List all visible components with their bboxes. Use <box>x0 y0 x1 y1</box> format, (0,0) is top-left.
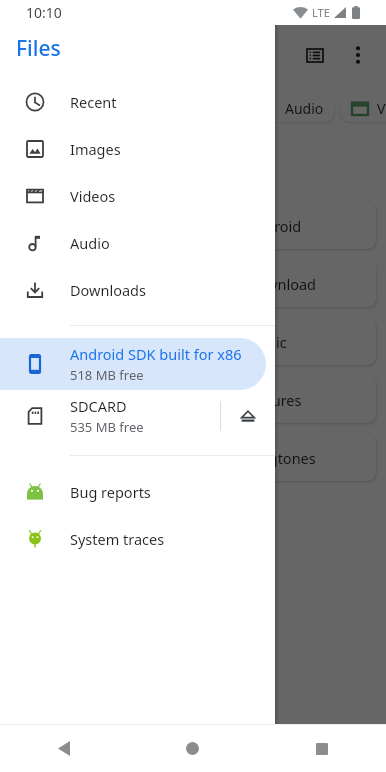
button[interactable]: Audio <box>251 95 334 122</box>
staticText: Android SDK built for x86 <box>70 344 242 364</box>
staticText: System traces <box>70 529 165 549</box>
button[interactable]: Documents <box>16 95 136 122</box>
staticText: Podcasts <box>59 448 120 468</box>
staticText: 10:10 <box>26 3 62 22</box>
button[interactable]: Back <box>0 725 128 772</box>
button[interactable]: Audio <box>0 219 275 266</box>
button[interactable]: Download <box>198 260 376 307</box>
staticText: Downloads <box>70 280 146 300</box>
button[interactable]: Recent apps <box>257 725 386 772</box>
staticText: Bug reports <box>70 482 151 502</box>
button[interactable]: Images <box>0 125 275 172</box>
button[interactable]: System traces <box>0 515 275 562</box>
button[interactable]: Videos <box>0 172 275 219</box>
staticText: DCIM <box>59 274 97 294</box>
staticText: Images <box>70 139 121 159</box>
staticText: Ringtones <box>247 448 316 468</box>
button[interactable]: Home <box>128 725 257 772</box>
button[interactable]: Downloads <box>0 266 275 313</box>
staticText: Notifications <box>59 390 146 410</box>
staticText: Videos <box>70 186 116 206</box>
button[interactable]: Notifications <box>10 376 188 423</box>
button[interactable]: Music <box>198 318 376 365</box>
button[interactable]: Bug reports <box>0 468 275 515</box>
button[interactable]: Android <box>198 202 376 249</box>
button[interactable]: Alarms <box>10 202 188 249</box>
staticText: Music <box>247 332 287 352</box>
button[interactable]: SDCARD <box>0 390 275 442</box>
staticText: Videos <box>377 99 386 118</box>
staticText: Recent <box>70 92 117 112</box>
button[interactable]: More options <box>334 31 382 79</box>
staticText: Pictures <box>247 390 302 410</box>
staticText: Audio <box>285 99 324 118</box>
button[interactable]: Ringtones <box>198 434 376 481</box>
button[interactable]: Movies <box>10 318 188 365</box>
staticText: Movies <box>59 332 107 352</box>
staticText: LTE <box>312 5 330 20</box>
button[interactable]: Android SDK built for x86 <box>0 338 266 390</box>
staticText: SDCARD <box>70 396 127 416</box>
button[interactable]: Eject <box>221 390 275 442</box>
staticText: Audio <box>70 233 110 253</box>
staticText: 535 MB free <box>70 418 144 436</box>
button[interactable]: Recent <box>0 78 275 125</box>
staticText: Documents <box>50 99 126 118</box>
staticText: 518 MB free <box>70 366 144 384</box>
button[interactable]: DCIM <box>10 260 188 307</box>
staticText: Android <box>247 216 302 236</box>
button[interactable]: Videos <box>341 95 386 122</box>
staticText: Files <box>16 34 61 63</box>
staticText: Download <box>247 274 316 294</box>
button[interactable]: List view <box>291 31 339 79</box>
button[interactable]: Pictures <box>198 376 376 423</box>
